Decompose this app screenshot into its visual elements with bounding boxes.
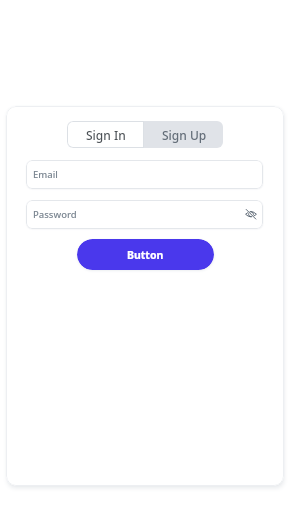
button[interactable]: Show password (244, 207, 258, 221)
button[interactable]: Email (26, 160, 263, 189)
staticText: Sign In (86, 127, 126, 143)
staticText: Password (33, 208, 77, 221)
staticText: Sign Up (162, 127, 207, 143)
staticText: Button (127, 248, 164, 262)
button[interactable]: Sign Up (144, 121, 223, 148)
button[interactable]: Password (26, 200, 263, 229)
button[interactable]: Sign In (67, 121, 144, 148)
button[interactable]: Button (77, 239, 214, 270)
staticText: Email (33, 168, 58, 181)
